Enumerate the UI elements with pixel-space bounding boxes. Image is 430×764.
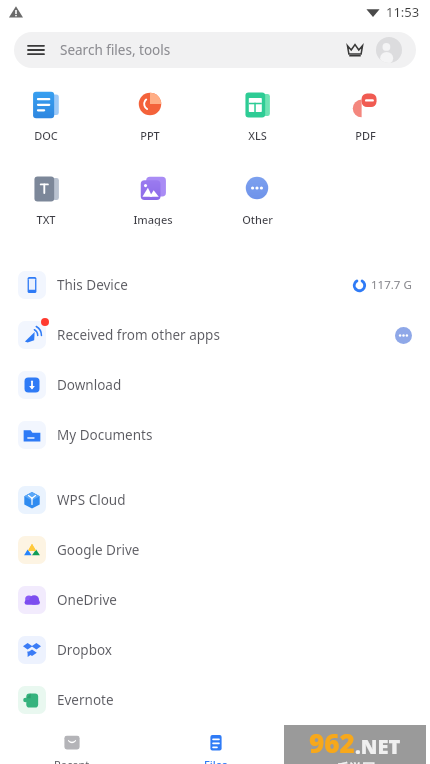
button[interactable]: Other bbox=[240, 168, 274, 230]
staticText: Images bbox=[133, 212, 173, 226]
staticText: 962 bbox=[309, 725, 355, 760]
button[interactable]: Received from other apps bbox=[0, 310, 430, 360]
button[interactable]: OneDrive bbox=[0, 575, 430, 625]
button[interactable]: WPS Cloud bbox=[0, 475, 430, 525]
button[interactable]: Evernote bbox=[0, 675, 430, 725]
button[interactable]: Google Drive bbox=[0, 525, 430, 575]
button[interactable]: Dropbox bbox=[0, 625, 430, 675]
button[interactable]: Download bbox=[0, 360, 430, 410]
button[interactable]: Account bbox=[376, 37, 402, 63]
staticText: .NET bbox=[355, 733, 401, 760]
staticText: DOC bbox=[34, 128, 58, 142]
staticText: Other bbox=[242, 212, 273, 226]
staticText: PPT bbox=[140, 128, 160, 142]
staticText: Recent bbox=[54, 757, 90, 764]
staticText: Received from other apps bbox=[57, 326, 220, 344]
staticText: Google Drive bbox=[57, 541, 140, 559]
button[interactable]: XLS bbox=[240, 84, 274, 146]
staticText: Download bbox=[57, 376, 122, 394]
staticText: 11:53 bbox=[386, 3, 420, 21]
button[interactable]: My Documents bbox=[0, 410, 430, 460]
button[interactable]: Files bbox=[144, 725, 287, 764]
staticText: This Device bbox=[57, 276, 128, 294]
staticText: WPS Cloud bbox=[57, 491, 126, 509]
button[interactable]: Premium bbox=[346, 41, 364, 59]
staticText: Search files, tools bbox=[60, 41, 171, 59]
staticText: 117.7 G bbox=[371, 277, 412, 293]
staticText: My Documents bbox=[57, 426, 153, 444]
staticText: Evernote bbox=[57, 691, 114, 709]
button[interactable]: DOC bbox=[29, 84, 63, 146]
button[interactable]: PDF bbox=[348, 84, 382, 146]
button[interactable]: More options bbox=[395, 327, 412, 344]
button[interactable]: Menu bbox=[14, 32, 416, 68]
staticText: 乐游网 bbox=[336, 760, 375, 764]
button[interactable]: PPT bbox=[133, 84, 167, 146]
button[interactable]: Recent bbox=[0, 725, 144, 764]
staticText: TXT bbox=[36, 212, 56, 226]
button[interactable]: Images bbox=[133, 168, 173, 230]
staticText: Dropbox bbox=[57, 641, 112, 659]
staticText: OneDrive bbox=[57, 591, 117, 609]
other: Menu bbox=[28, 42, 44, 58]
button[interactable]: This Device bbox=[0, 260, 430, 310]
staticText: PDF bbox=[355, 128, 376, 142]
staticText: Files bbox=[204, 757, 228, 764]
button[interactable]: TXT bbox=[29, 168, 63, 230]
staticText: XLS bbox=[248, 128, 267, 142]
